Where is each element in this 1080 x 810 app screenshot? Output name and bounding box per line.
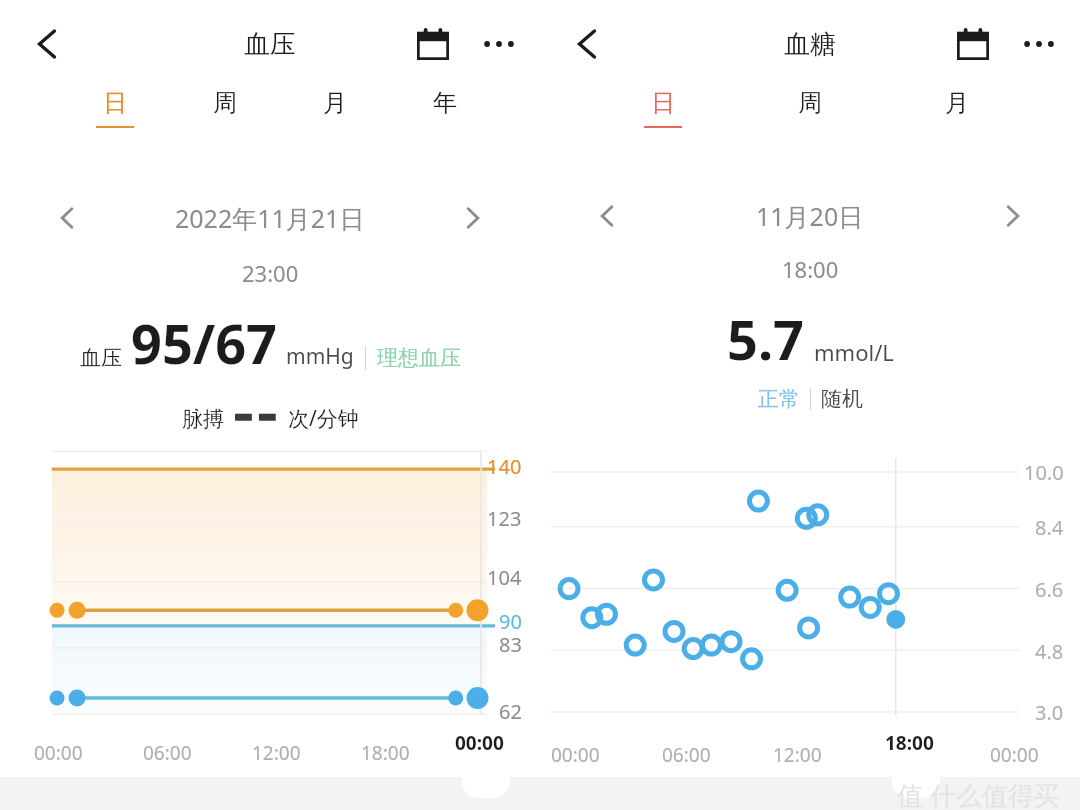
staticText: 18:00 [361, 740, 410, 766]
staticText: 6.6 [1035, 576, 1064, 603]
staticText: 00:00 [455, 730, 504, 756]
staticText: 62 [499, 698, 522, 725]
staticText: 06:00 [143, 740, 192, 766]
staticText: 104 [487, 564, 522, 591]
button[interactable]: 年 [390, 88, 500, 164]
staticText: 06:00 [662, 742, 711, 768]
staticText: 12:00 [252, 740, 301, 766]
button[interactable]: Previous [42, 193, 92, 243]
staticText: 周 [798, 88, 822, 118]
button[interactable]: 日 [60, 88, 170, 164]
button[interactable]: Calendar [406, 17, 460, 71]
staticText: 2022年11月21日 [175, 201, 365, 235]
staticText: 次/分钟 [288, 404, 359, 433]
staticText: 18:00 [782, 254, 839, 284]
staticText: 4.8 [1035, 638, 1064, 665]
staticText: 日 [103, 88, 127, 118]
button[interactable]: 周 [170, 88, 280, 164]
button[interactable]: Back [558, 15, 616, 73]
staticText: 日 [651, 88, 675, 118]
staticText: 血压 [244, 28, 296, 61]
staticText: 00:00 [34, 740, 83, 766]
staticText: mmHg [286, 342, 354, 371]
staticText: 83 [499, 631, 522, 658]
staticText: 脉搏 [182, 406, 224, 432]
staticText: 理想血压 [377, 345, 461, 371]
staticText: 血压 [80, 345, 122, 371]
staticText: 周 [213, 88, 237, 118]
staticText: 随机 [821, 386, 863, 412]
button[interactable]: 日 [590, 88, 736, 164]
button[interactable]: More options [472, 17, 526, 71]
staticText: 10.0 [1024, 459, 1064, 486]
button[interactable]: More options [1012, 17, 1066, 71]
staticText: 值 什么值得买 [897, 777, 1060, 810]
button[interactable]: 周 [736, 88, 883, 164]
staticText: 00:00 [990, 742, 1039, 768]
button[interactable]: Calendar [946, 17, 1000, 71]
staticText: 月 [323, 88, 347, 118]
button[interactable]: 月 [883, 88, 1030, 164]
staticText: 3.0 [1035, 699, 1064, 726]
staticText: 8.4 [1035, 514, 1064, 541]
staticText: 18:00 [885, 730, 934, 756]
staticText: 12:00 [773, 742, 822, 768]
button[interactable]: Next [988, 191, 1038, 241]
button[interactable]: 月 [280, 88, 390, 164]
button[interactable]: Next [448, 193, 498, 243]
staticText: 23:00 [242, 258, 299, 288]
staticText: 140 [487, 453, 522, 480]
staticText: 正常 [758, 386, 800, 412]
staticText: 月 [945, 88, 969, 118]
staticText: 血糖 [784, 28, 836, 61]
staticText: mmol/L [814, 337, 894, 367]
button[interactable]: Previous [582, 191, 632, 241]
button[interactable]: Back [18, 15, 76, 73]
staticText: 95/67 [131, 306, 277, 380]
staticText: 11月20日 [756, 199, 864, 233]
staticText: 年 [433, 88, 457, 118]
staticText: 90 [499, 608, 522, 635]
staticText: 5.7 [727, 302, 804, 376]
staticText: 123 [487, 505, 522, 532]
staticText: 00:00 [551, 742, 600, 768]
